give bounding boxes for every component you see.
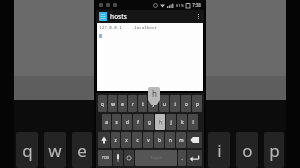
staticText: 127.0.0.1 bbox=[99, 25, 122, 31]
staticText: ?123 bbox=[102, 156, 109, 160]
button[interactable]: c bbox=[132, 132, 142, 148]
button[interactable]: m bbox=[176, 132, 186, 148]
staticText: k bbox=[181, 119, 184, 125]
staticText: r bbox=[132, 101, 134, 107]
staticText: n bbox=[169, 137, 172, 143]
staticText: y bbox=[152, 101, 155, 107]
button[interactable]: i bbox=[170, 95, 180, 112]
staticText: a bbox=[105, 119, 108, 125]
staticText: p bbox=[269, 139, 280, 162]
button[interactable]: 127.0.0.1 bbox=[97, 23, 203, 91]
staticText: h bbox=[152, 88, 157, 99]
button[interactable]: e bbox=[118, 95, 127, 112]
button[interactable]: t bbox=[138, 95, 147, 112]
button[interactable]: l bbox=[188, 114, 198, 130]
staticText: l bbox=[192, 119, 194, 125]
button[interactable]: Enter bbox=[187, 150, 202, 166]
button[interactable]: Backspace bbox=[187, 132, 202, 148]
staticText: g bbox=[148, 119, 151, 125]
button[interactable]: File bbox=[99, 12, 127, 21]
button[interactable]: More options bbox=[192, 10, 204, 23]
staticText: d bbox=[126, 119, 129, 125]
other: File bbox=[99, 12, 107, 21]
button[interactable]: f bbox=[133, 114, 143, 130]
button[interactable]: w bbox=[108, 95, 117, 112]
staticText: c bbox=[136, 137, 139, 143]
staticText: z bbox=[114, 137, 117, 143]
button[interactable]: Voice input bbox=[113, 150, 123, 166]
staticText: s bbox=[115, 119, 118, 125]
button[interactable]: p bbox=[192, 95, 202, 112]
staticText: u bbox=[163, 101, 166, 107]
staticText: b bbox=[158, 137, 161, 143]
button[interactable]: ?123 bbox=[98, 150, 112, 166]
button[interactable]: a bbox=[102, 114, 111, 130]
button[interactable]: h bbox=[155, 114, 165, 130]
button[interactable]: u bbox=[159, 95, 169, 112]
staticText: o bbox=[185, 101, 188, 107]
staticText: f bbox=[137, 119, 139, 125]
staticText: v bbox=[147, 137, 150, 143]
staticText: localhost bbox=[134, 25, 157, 31]
staticText: i bbox=[174, 101, 176, 107]
staticText: English bbox=[151, 156, 162, 160]
staticText: 61% bbox=[176, 3, 184, 8]
staticText: q bbox=[22, 139, 33, 162]
button[interactable]: x bbox=[121, 132, 131, 148]
button[interactable]: z bbox=[111, 132, 120, 148]
staticText: e bbox=[121, 101, 124, 107]
button[interactable]: . bbox=[178, 150, 186, 166]
staticText: q bbox=[101, 101, 104, 107]
button[interactable]: y bbox=[148, 95, 158, 112]
button[interactable]: Change keyboard bbox=[124, 150, 134, 166]
staticText: x bbox=[125, 137, 128, 143]
staticText: w bbox=[111, 101, 115, 107]
staticText: hosts bbox=[110, 12, 127, 21]
button[interactable]: r bbox=[128, 95, 137, 112]
button[interactable]: j bbox=[166, 114, 176, 130]
staticText: i bbox=[217, 139, 222, 162]
button[interactable]: v bbox=[143, 132, 153, 148]
button[interactable]: n bbox=[165, 132, 175, 148]
staticText: t bbox=[142, 101, 144, 107]
button[interactable]: b bbox=[154, 132, 164, 148]
staticText: w bbox=[48, 139, 62, 162]
button[interactable]: g bbox=[144, 114, 154, 130]
button[interactable]: Shift bbox=[98, 132, 110, 148]
button[interactable]: o bbox=[181, 95, 191, 112]
staticText: o bbox=[242, 139, 253, 162]
button[interactable]: k bbox=[177, 114, 187, 130]
button[interactable]: q bbox=[98, 95, 107, 112]
button[interactable]: d bbox=[122, 114, 132, 130]
button[interactable]: s bbox=[112, 114, 121, 130]
staticText: p bbox=[196, 101, 199, 107]
staticText: 7:38 bbox=[192, 2, 201, 8]
staticText: m bbox=[179, 137, 184, 143]
staticText: h bbox=[159, 119, 162, 125]
staticText: . bbox=[181, 155, 183, 161]
staticText: j bbox=[170, 119, 172, 125]
staticText: e bbox=[77, 139, 87, 162]
